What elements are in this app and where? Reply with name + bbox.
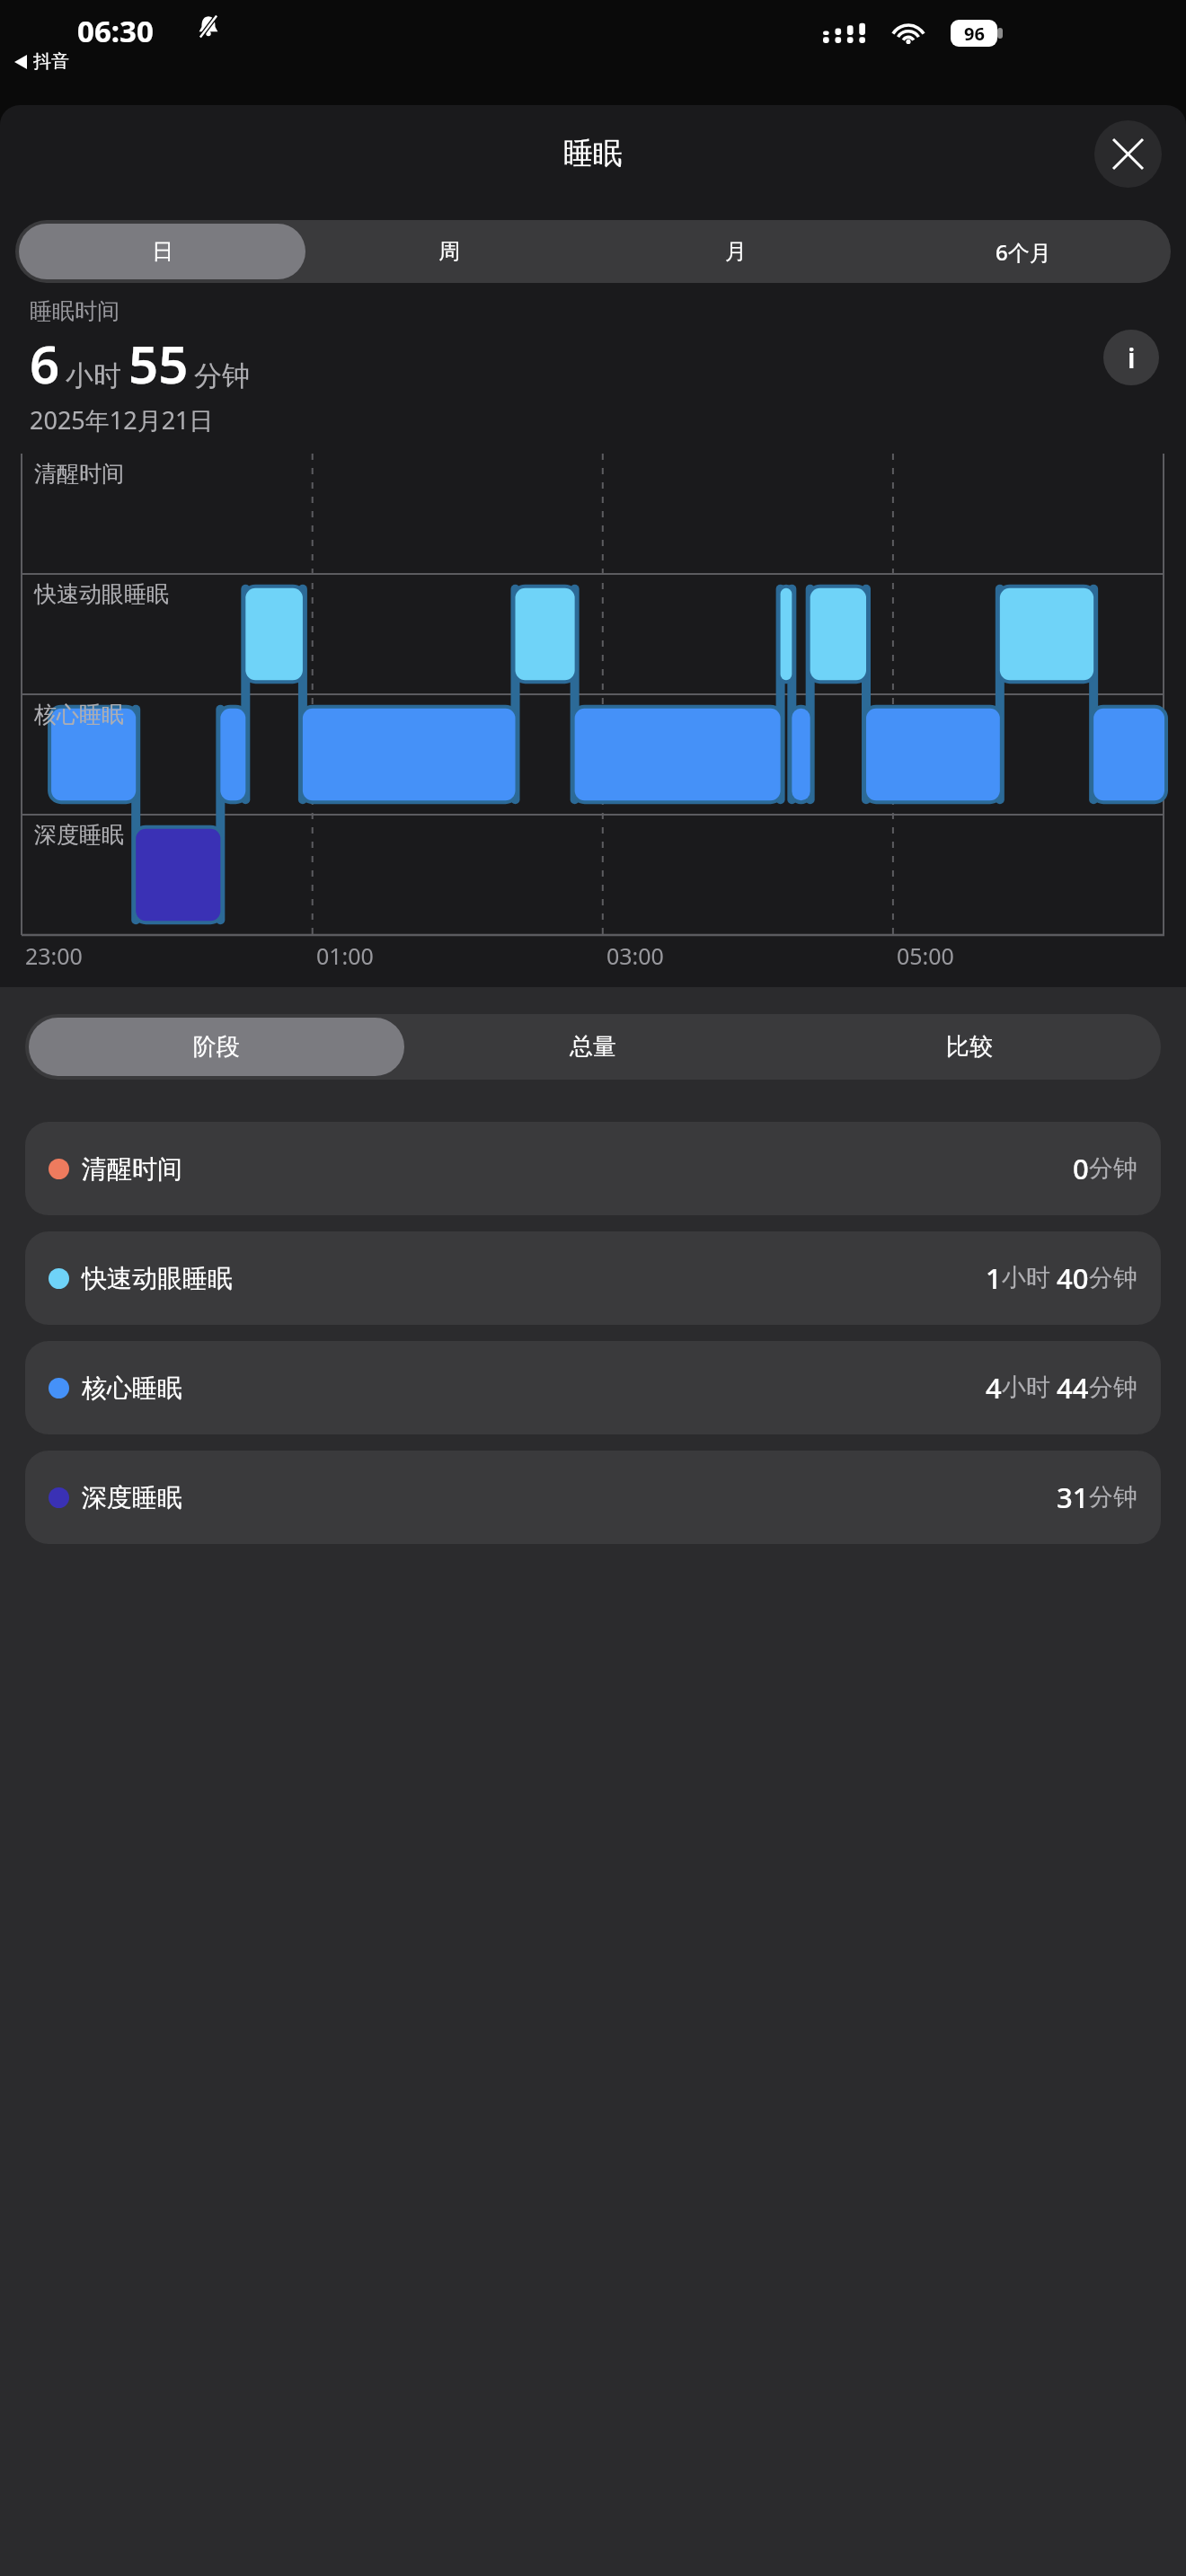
button[interactable]: 周 bbox=[305, 224, 592, 279]
staticText: 01:00 bbox=[316, 940, 374, 971]
button[interactable]: 比较 bbox=[781, 1018, 1157, 1076]
staticText: 睡眠时间 bbox=[30, 297, 119, 325]
staticText: 比较 bbox=[946, 1032, 993, 1062]
staticText: 小时 bbox=[66, 358, 121, 393]
staticText: 23:00 bbox=[25, 940, 83, 971]
staticText: 分钟 bbox=[1089, 1153, 1137, 1184]
button[interactable]: 核心睡眠 bbox=[25, 1341, 1161, 1434]
button[interactable]: 信息 bbox=[1103, 330, 1159, 385]
staticText: 分钟 bbox=[1089, 1482, 1137, 1513]
staticText: 小时 bbox=[1002, 1372, 1050, 1403]
button[interactable]: 阶段 bbox=[29, 1018, 404, 1076]
staticText: 日 bbox=[152, 238, 173, 265]
staticText: 6个月 bbox=[996, 237, 1051, 267]
staticText: 周 bbox=[438, 238, 460, 265]
staticText: 分钟 bbox=[1089, 1372, 1137, 1403]
staticText: 睡眠 bbox=[563, 135, 623, 172]
staticText: 6 bbox=[30, 328, 60, 399]
staticText: 深度睡眠 bbox=[34, 821, 124, 849]
button[interactable]: 月 bbox=[592, 224, 880, 279]
staticText: 快速动眼睡眠 bbox=[82, 1263, 233, 1294]
staticText: 44 bbox=[1057, 1369, 1089, 1407]
button[interactable]: 快速动眼睡眠 bbox=[25, 1231, 1161, 1325]
staticText: 55 bbox=[128, 328, 189, 399]
button[interactable]: 日 bbox=[19, 224, 305, 279]
staticText: 05:00 bbox=[897, 940, 954, 971]
staticText: 40 bbox=[1057, 1259, 1089, 1297]
staticText: 阶段 bbox=[193, 1032, 240, 1062]
staticText: 核心睡眠 bbox=[34, 701, 124, 728]
staticText: 清醒时间 bbox=[82, 1153, 182, 1185]
staticText: 4 bbox=[986, 1369, 1002, 1407]
staticText: 快速动眼睡眠 bbox=[34, 580, 169, 608]
staticText: 小时 bbox=[1002, 1263, 1050, 1293]
staticText: 1 bbox=[986, 1259, 1002, 1297]
staticText: 分钟 bbox=[1089, 1263, 1137, 1293]
staticText: 总量 bbox=[570, 1032, 616, 1062]
staticText: 月 bbox=[725, 238, 747, 265]
staticText: 31 bbox=[1057, 1478, 1089, 1516]
button[interactable]: 关闭 bbox=[1094, 120, 1162, 188]
staticText: 2025年12月21日 bbox=[30, 403, 214, 437]
staticText: 96 bbox=[964, 22, 985, 46]
staticText: i bbox=[1128, 340, 1136, 376]
staticText: 清醒时间 bbox=[34, 460, 124, 488]
button[interactable]: 6个月 bbox=[880, 224, 1167, 279]
staticText: 0 bbox=[1073, 1150, 1089, 1187]
staticText: 深度睡眠 bbox=[82, 1482, 182, 1513]
button[interactable]: 总量 bbox=[404, 1018, 781, 1076]
staticText: 06:30 bbox=[77, 11, 154, 51]
staticText: 核心睡眠 bbox=[82, 1372, 182, 1404]
staticText: 抖音 bbox=[33, 50, 69, 73]
staticText: 分钟 bbox=[194, 358, 250, 393]
staticText: 03:00 bbox=[606, 940, 664, 971]
button[interactable]: 深度睡眠 bbox=[25, 1451, 1161, 1544]
button[interactable]: 清醒时间 bbox=[25, 1122, 1161, 1215]
